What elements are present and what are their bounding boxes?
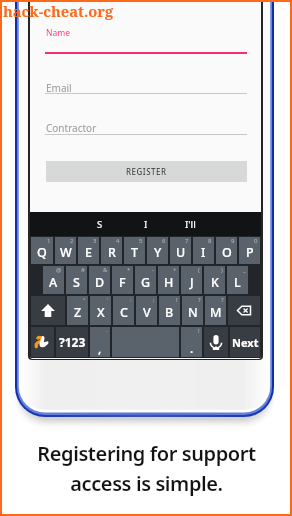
staticText: S bbox=[97, 218, 103, 231]
staticText: 9 bbox=[231, 237, 235, 245]
button[interactable]: H bbox=[158, 266, 179, 294]
button[interactable]: U bbox=[170, 237, 191, 264]
staticText: J bbox=[190, 274, 194, 291]
button[interactable]: , bbox=[90, 327, 110, 357]
staticText: 0 bbox=[254, 237, 258, 245]
button[interactable]: A bbox=[43, 266, 64, 294]
staticText: ?123 bbox=[59, 334, 86, 350]
staticText: E bbox=[85, 244, 92, 261]
staticText: . bbox=[190, 340, 194, 356]
staticText: 4 bbox=[116, 237, 120, 245]
staticText: I bbox=[201, 244, 206, 261]
button[interactable]: S bbox=[66, 266, 87, 294]
button[interactable]: O bbox=[216, 237, 237, 264]
staticText: H bbox=[164, 274, 174, 291]
staticText: 8 bbox=[208, 237, 212, 245]
staticText: Registering for support bbox=[37, 440, 256, 467]
button[interactable]: S bbox=[80, 212, 120, 236]
button[interactable]: Y bbox=[147, 237, 168, 264]
button[interactable]: M bbox=[205, 296, 226, 325]
button[interactable]: J bbox=[181, 266, 202, 294]
button[interactable]: T bbox=[124, 237, 145, 264]
button[interactable]: N bbox=[182, 296, 203, 325]
staticText: I'll bbox=[185, 218, 196, 231]
staticText: hack-cheat.org bbox=[3, 1, 114, 21]
staticText: V bbox=[143, 304, 151, 321]
staticText: B bbox=[165, 304, 174, 321]
staticText: A bbox=[49, 274, 58, 291]
staticText: @ bbox=[56, 266, 62, 274]
button[interactable]: V bbox=[136, 296, 157, 325]
button[interactable]: F bbox=[112, 266, 133, 294]
button[interactable]: L bbox=[227, 266, 248, 294]
button[interactable]: Voice input bbox=[204, 327, 228, 357]
button[interactable]: I bbox=[126, 212, 166, 236]
staticText: ° bbox=[83, 296, 86, 304]
button[interactable]: B bbox=[159, 296, 180, 325]
staticText: Contractor bbox=[46, 121, 97, 135]
staticText: G bbox=[141, 274, 151, 291]
button[interactable]: REGISTER bbox=[46, 161, 247, 182]
staticText: T bbox=[131, 244, 139, 261]
button[interactable]: P bbox=[239, 237, 260, 264]
staticText: K bbox=[211, 274, 219, 291]
button[interactable]: X bbox=[90, 296, 111, 325]
staticText: ' bbox=[107, 296, 109, 304]
staticText: ! bbox=[198, 327, 200, 335]
staticText: ? bbox=[221, 296, 224, 304]
staticText: L bbox=[234, 274, 241, 291]
staticText: ( bbox=[198, 266, 200, 274]
button[interactable]: E bbox=[78, 237, 99, 264]
button[interactable]: I bbox=[193, 237, 214, 264]
staticText: ) bbox=[221, 266, 223, 274]
staticText: 7 bbox=[185, 237, 189, 245]
staticText: 1 bbox=[47, 237, 51, 245]
button[interactable]: Backspace bbox=[228, 296, 260, 325]
button[interactable]: D bbox=[89, 266, 110, 294]
button[interactable]: W bbox=[55, 237, 76, 264]
button[interactable]: Emoji keyboard bbox=[31, 327, 54, 357]
staticText: D bbox=[95, 274, 105, 291]
staticText: N bbox=[188, 304, 198, 321]
staticText: REGISTER bbox=[126, 166, 167, 177]
staticText: U bbox=[176, 244, 186, 261]
staticText: access is simple. bbox=[70, 470, 223, 497]
button[interactable]: G bbox=[135, 266, 156, 294]
button[interactable]: C bbox=[113, 296, 134, 325]
button[interactable]: . bbox=[181, 327, 202, 357]
staticText: S bbox=[73, 274, 80, 291]
staticText: 2 bbox=[70, 237, 74, 245]
staticText: _ bbox=[243, 266, 246, 274]
staticText: Z bbox=[74, 304, 82, 321]
staticText: # bbox=[81, 266, 85, 274]
staticText: P bbox=[246, 244, 254, 261]
staticText: + bbox=[173, 266, 177, 274]
staticText: W bbox=[60, 244, 72, 261]
staticText: Name bbox=[46, 27, 70, 39]
button[interactable]: ?123 bbox=[56, 327, 88, 357]
staticText: M bbox=[210, 304, 222, 321]
button[interactable]: Next bbox=[230, 327, 260, 357]
button[interactable]: Q bbox=[31, 237, 53, 264]
button[interactable]: Shift bbox=[31, 296, 65, 325]
staticText: - bbox=[152, 266, 154, 274]
staticText: X bbox=[97, 304, 105, 321]
button[interactable]: K bbox=[204, 266, 225, 294]
staticText: * bbox=[127, 266, 131, 274]
staticText: Next bbox=[232, 335, 259, 350]
staticText: C bbox=[120, 304, 128, 321]
staticText: , bbox=[98, 340, 102, 356]
staticText: : bbox=[130, 296, 132, 304]
button[interactable]: Z bbox=[67, 296, 88, 325]
staticText: I bbox=[144, 218, 148, 231]
button[interactable]: I'll bbox=[170, 212, 210, 236]
staticText: · bbox=[106, 327, 108, 335]
staticText: Email bbox=[46, 81, 72, 95]
staticText: Q bbox=[37, 244, 47, 261]
staticText: Y bbox=[154, 244, 162, 261]
staticText: 3 bbox=[93, 237, 97, 245]
staticText: ! bbox=[176, 296, 178, 304]
button[interactable]: R bbox=[101, 237, 122, 264]
staticText: R bbox=[108, 244, 116, 261]
